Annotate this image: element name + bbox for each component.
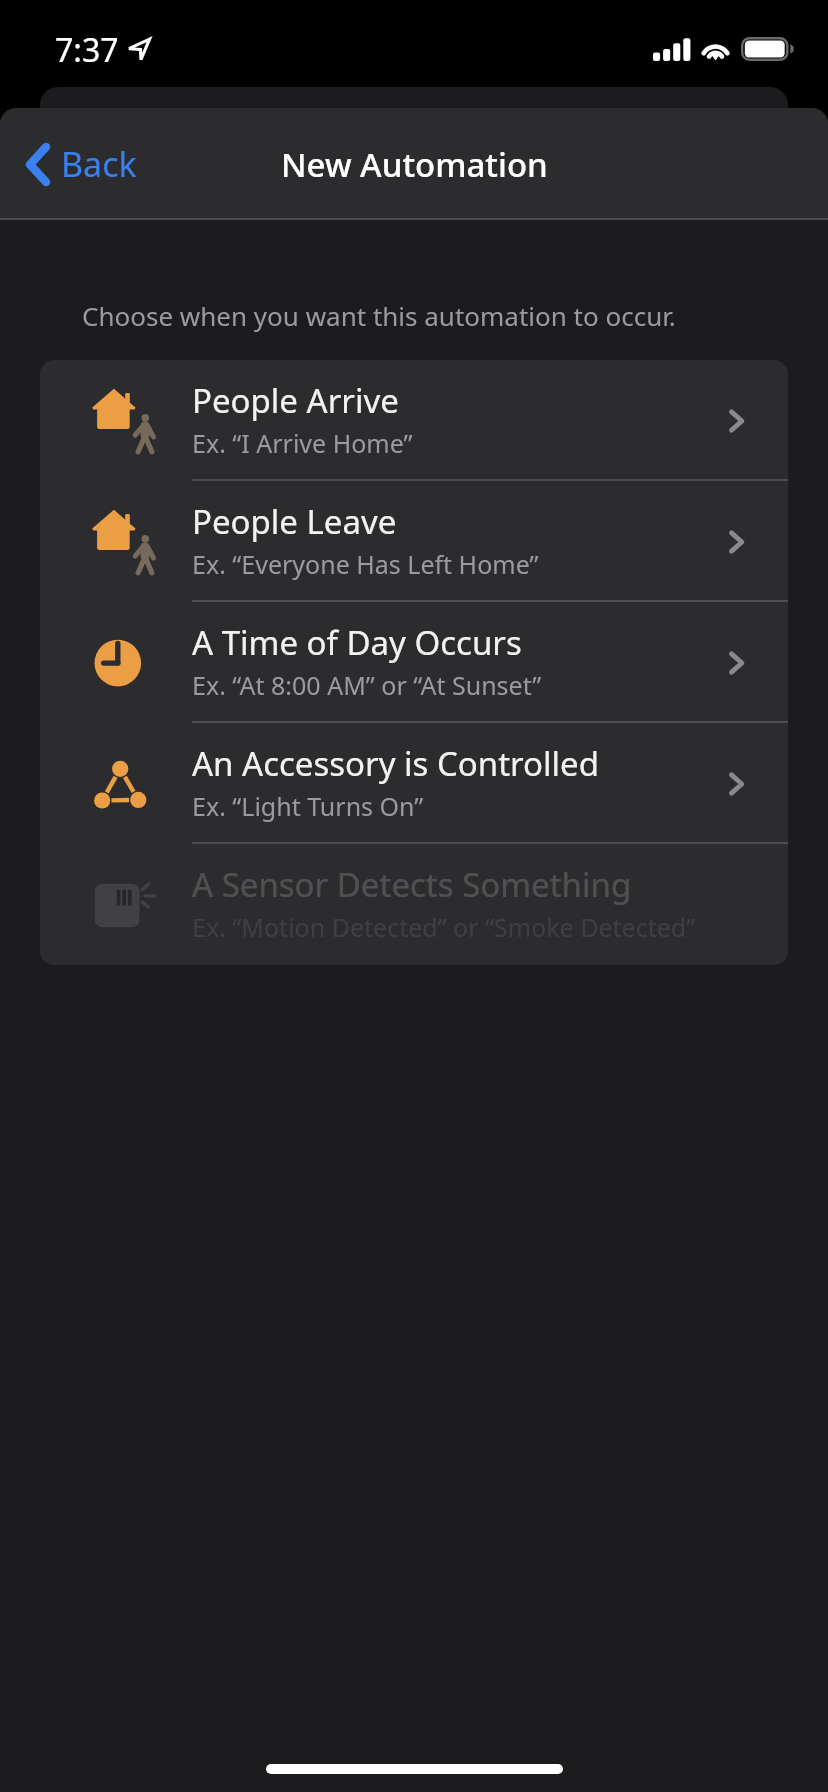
staticText: People Leave	[192, 499, 397, 544]
button[interactable]: Back	[0, 108, 153, 220]
staticText: Ex. “Motion Detected” or “Smoke Detected…	[192, 910, 696, 944]
button[interactable]: A Time of Day Occurs	[40, 602, 788, 723]
staticText: A Time of Day Occurs	[192, 620, 522, 665]
staticText: People Arrive	[192, 378, 399, 423]
staticText: An Accessory is Controlled	[192, 741, 599, 786]
button[interactable]: People Arrive	[40, 360, 788, 481]
staticText: Ex. “Light Turns On”	[192, 789, 424, 823]
staticText: 7:37	[55, 28, 119, 72]
staticText: Ex. “I Arrive Home”	[192, 426, 413, 460]
staticText: Choose when you want this automation to …	[82, 298, 676, 333]
staticText: A Sensor Detects Something	[192, 862, 632, 907]
staticText: Ex. “Everyone Has Left Home”	[192, 547, 539, 581]
button[interactable]: A Sensor Detects Something	[40, 844, 788, 965]
button[interactable]: People Leave	[40, 481, 788, 602]
button[interactable]: An Accessory is Controlled	[40, 723, 788, 844]
staticText: Back	[61, 141, 137, 187]
staticText: New Automation	[281, 142, 548, 187]
staticText: Ex. “At 8:00 AM” or “At Sunset”	[192, 668, 542, 702]
